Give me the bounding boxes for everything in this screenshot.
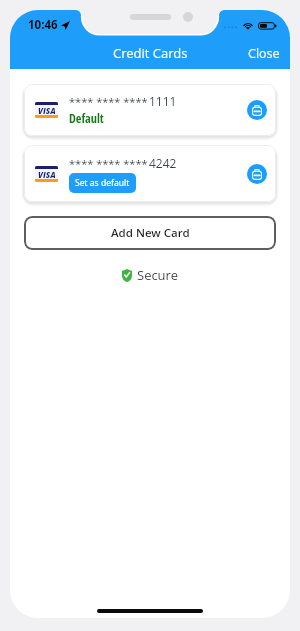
staticText: Close — [248, 45, 280, 62]
staticText: Credit Cards — [113, 44, 188, 62]
button[interactable]: Delete card — [247, 100, 267, 120]
staticText: Add New Card — [111, 225, 190, 241]
staticText: 1111 — [149, 93, 177, 109]
button[interactable]: VISA — [24, 84, 276, 136]
staticText: Set as default — [75, 177, 130, 189]
staticText: VISA — [38, 169, 56, 180]
button[interactable]: Set as default — [69, 173, 136, 193]
staticText: 10:46 — [28, 17, 58, 33]
button[interactable]: VISA — [24, 145, 276, 202]
button[interactable]: Delete card — [247, 164, 267, 184]
staticText: Secure — [137, 266, 178, 284]
button[interactable]: Add New Card — [24, 216, 276, 250]
staticText: **** **** **** — [69, 94, 148, 109]
button[interactable]: Close — [236, 41, 290, 66]
staticText: Default — [69, 110, 104, 127]
staticText: VISA — [38, 105, 56, 116]
staticText: 4242 — [149, 155, 177, 171]
staticText: **** **** **** — [69, 156, 148, 171]
